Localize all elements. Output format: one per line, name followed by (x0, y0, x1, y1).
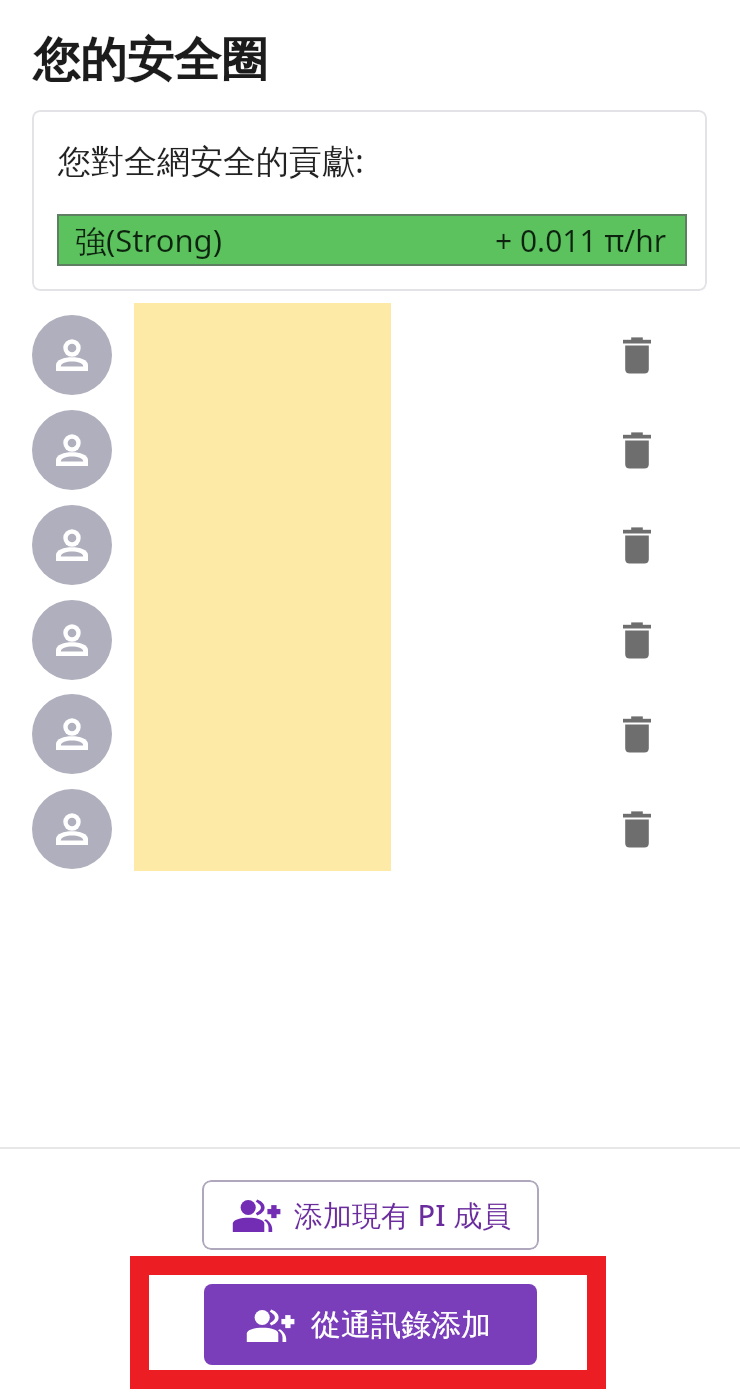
button[interactable]: 添加現有 PI 成員 (202, 1180, 539, 1250)
staticText: 從通訊錄添加 (311, 1306, 491, 1344)
button[interactable]: Member avatar (32, 694, 112, 774)
staticText: 您對全網安全的貢獻: (58, 138, 364, 183)
button[interactable]: Member avatar (32, 600, 112, 680)
button[interactable]: Remove member (613, 805, 661, 853)
button[interactable]: Remove member (613, 521, 661, 569)
button[interactable]: Member avatar (32, 315, 112, 395)
button[interactable]: Remove member (613, 426, 661, 474)
button[interactable]: Member avatar (32, 789, 112, 869)
button[interactable]: Remove member (613, 331, 661, 379)
button[interactable]: Member avatar (32, 410, 112, 490)
staticText: 添加現有 PI 成員 (294, 1195, 512, 1235)
button[interactable]: Remove member (613, 710, 661, 758)
staticText: + 0.011 π/hr (495, 220, 667, 261)
staticText: 您的安全圈 (33, 31, 268, 90)
button[interactable]: 從通訊錄添加 (204, 1284, 537, 1365)
button[interactable]: Remove member (613, 616, 661, 664)
button[interactable]: Member avatar (32, 505, 112, 585)
staticText: 強(Strong) (75, 219, 222, 261)
